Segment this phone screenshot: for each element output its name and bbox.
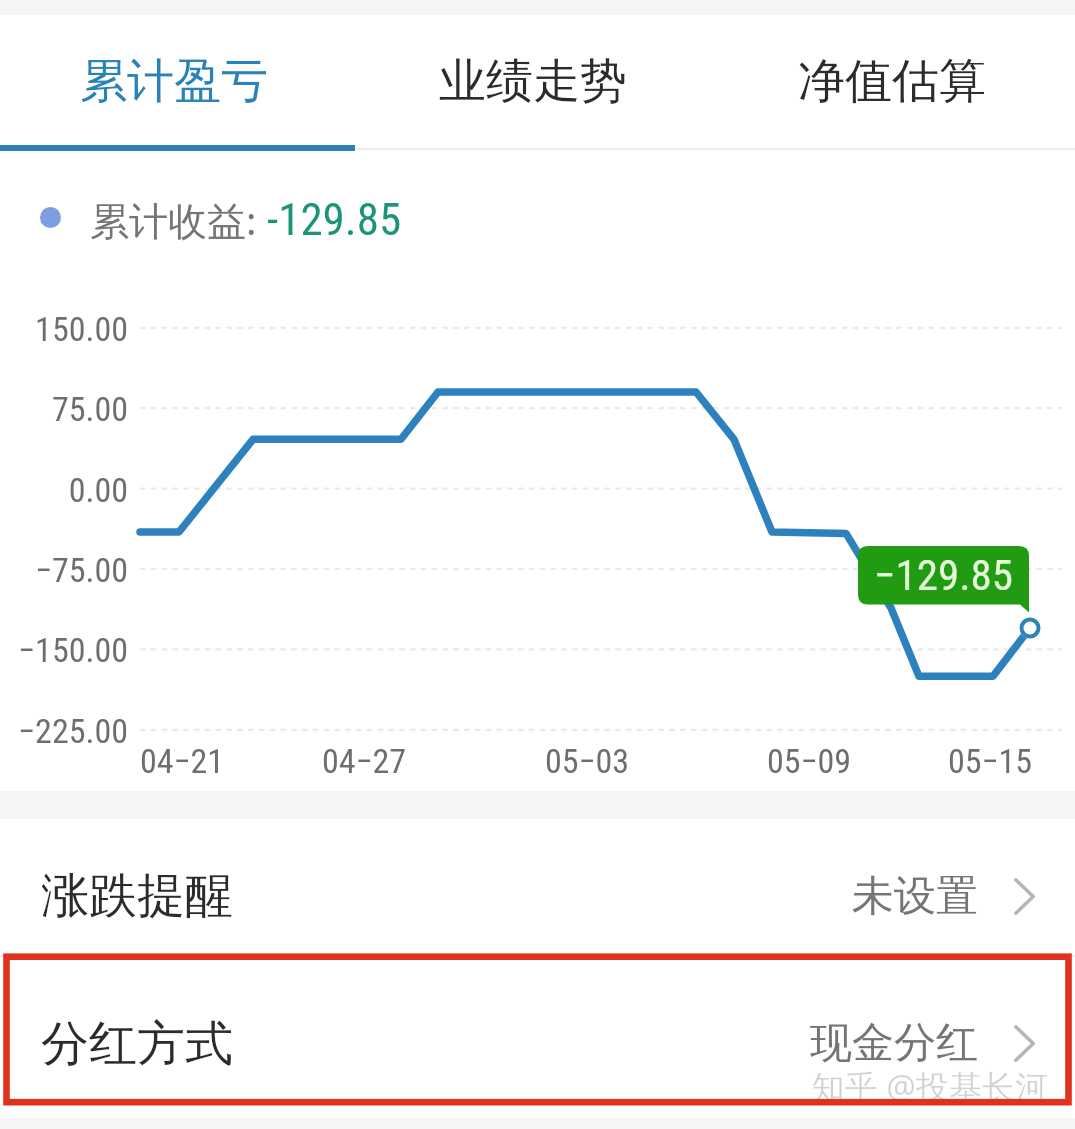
button[interactable]: 分红方式 [0, 957, 1075, 1102]
button[interactable]: 净值估算 [712, 15, 1071, 148]
staticText: 涨跌提醒 [41, 866, 233, 926]
staticText: 业绩走势 [439, 52, 627, 111]
staticText: −129.85 [874, 550, 1013, 600]
staticText: −225.00 [0, 711, 128, 751]
staticText: 05−03 [507, 741, 667, 781]
staticText: 05−15 [910, 741, 1070, 781]
staticText: 04−27 [284, 741, 444, 781]
staticText: 累计收益: [90, 193, 267, 241]
staticText: 04−21 [102, 741, 262, 781]
staticText: 分红方式 [41, 1014, 233, 1074]
button[interactable]: 业绩走势 [354, 15, 712, 148]
button[interactable]: 涨跌提醒 [0, 819, 1075, 964]
staticText: 75.00 [0, 389, 128, 429]
staticText: 未设置 [852, 870, 978, 923]
other: Open 分红方式 [1014, 1025, 1035, 1062]
staticText: 05−09 [729, 741, 889, 781]
staticText: 知乎 @投基长河 [0, 1064, 1048, 1109]
staticText: 0.00 [0, 470, 128, 510]
other: Open 涨跌提醒 [1014, 878, 1035, 915]
staticText: −150.00 [0, 630, 128, 670]
button[interactable]: 累计盈亏 [0, 15, 348, 148]
staticText: 150.00 [0, 309, 128, 349]
staticText: 现金分红 [810, 1017, 978, 1070]
staticText: 净值估算 [798, 52, 986, 111]
staticText: 累计盈亏 [80, 52, 268, 111]
staticText: −75.00 [0, 550, 128, 590]
staticText: -129.85 [267, 193, 402, 241]
